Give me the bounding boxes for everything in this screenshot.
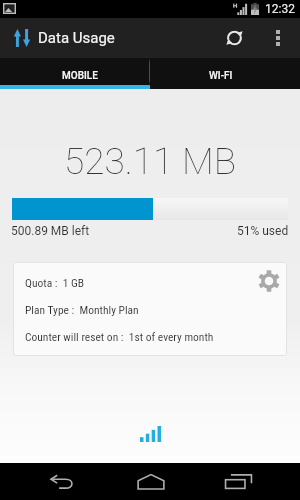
button[interactable]: Refresh <box>207 18 262 58</box>
button[interactable]: Signal strength <box>140 426 161 442</box>
staticText: 12:32 <box>265 2 295 16</box>
button[interactable]: Recent apps <box>206 463 271 500</box>
button[interactable]: WI-FI <box>150 58 300 85</box>
staticText: WI-FI <box>209 70 233 82</box>
button[interactable]: Back <box>29 463 94 500</box>
button[interactable]: MOBILE <box>0 58 149 85</box>
staticText: MOBILE <box>62 70 98 82</box>
staticText: 51% used <box>237 224 289 238</box>
button[interactable]: Home <box>118 463 183 500</box>
staticText: 523.11 MB <box>0 140 300 183</box>
button[interactable]: Quota : 1 GB <box>13 262 287 356</box>
button[interactable]: Data Usage <box>11 27 33 49</box>
staticText: Data Usage <box>38 29 115 47</box>
staticText: 500.89 MB left <box>11 224 90 238</box>
staticText: Counter will reset on : 1st of every mon… <box>25 330 214 343</box>
button[interactable]: More options <box>262 18 293 58</box>
button[interactable]: Settings <box>256 268 281 293</box>
staticText: Quota : 1 GB <box>25 276 85 289</box>
staticText: Plan Type : Monthly Plan <box>25 303 139 316</box>
